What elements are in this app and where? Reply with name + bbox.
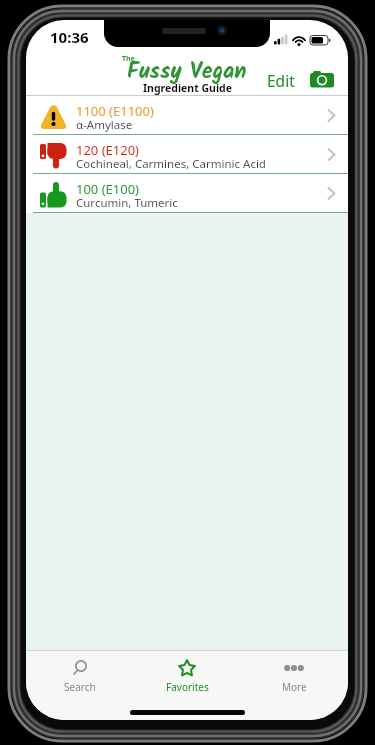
staticText: Ingredient Guide bbox=[143, 81, 232, 95]
button[interactable]: 120 (E120) bbox=[26, 135, 348, 173]
staticText: Search bbox=[64, 680, 96, 694]
staticText: Curcumin, Tumeric bbox=[76, 195, 178, 211]
staticText: 10:36 bbox=[50, 27, 89, 47]
staticText: The bbox=[122, 54, 135, 64]
staticText: α-Amylase bbox=[76, 117, 133, 133]
staticText: Favorites bbox=[166, 680, 209, 694]
staticText: More bbox=[282, 680, 307, 694]
staticText: 1100 (E1100) bbox=[76, 102, 154, 120]
button[interactable] bbox=[308, 69, 338, 91]
button[interactable]: Favorites bbox=[142, 653, 232, 701]
staticText: 120 (E120) bbox=[76, 141, 140, 159]
button[interactable]: 100 (E100) bbox=[26, 174, 348, 212]
staticText: Fussy Vegan bbox=[127, 55, 247, 90]
staticText: 100 (E100) bbox=[76, 180, 140, 198]
staticText: Edit bbox=[267, 70, 295, 91]
button[interactable]: 1100 (E1100) bbox=[26, 96, 348, 134]
staticText: Cochineal, Carmines, Carminic Acid bbox=[76, 156, 266, 172]
button[interactable]: Search bbox=[35, 653, 125, 701]
button[interactable]: Edit bbox=[267, 70, 303, 92]
button[interactable]: More bbox=[249, 653, 339, 701]
